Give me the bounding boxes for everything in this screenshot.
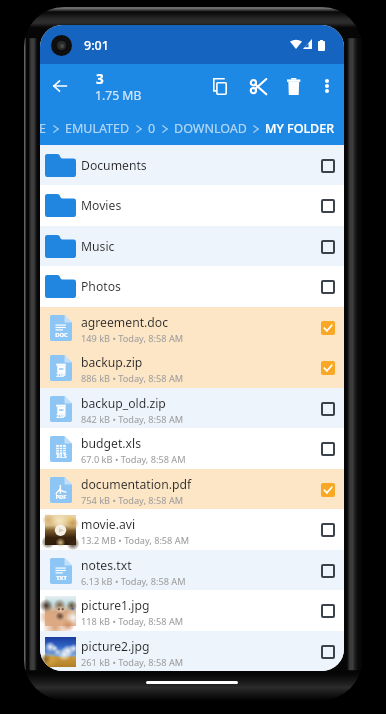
button[interactable]: More options	[310, 69, 344, 103]
staticText: XLS	[56, 452, 67, 460]
staticText: ZIP	[56, 371, 66, 379]
staticText: 3	[96, 70, 104, 88]
staticText: 13.2 MB • Today, 8:58 AM	[81, 534, 189, 547]
staticText: 1.75 MB	[95, 87, 142, 104]
button[interactable]: Select Movies	[312, 190, 343, 221]
button[interactable]: PDF	[40, 469, 344, 509]
staticText: 6.13 kB • Today, 8:58 AM	[81, 575, 186, 588]
button[interactable]: Select budget.xls	[312, 433, 343, 464]
button[interactable]: DOC	[40, 307, 344, 347]
staticText: Photos	[81, 278, 121, 295]
staticText: DOC	[55, 331, 68, 339]
staticText: movie.avi	[81, 516, 136, 533]
staticText: picture1.jpg	[81, 597, 150, 614]
button[interactable]: picture1.jpg	[40, 590, 344, 631]
button[interactable]: movie.avi	[40, 509, 344, 550]
staticText: notes.txt	[81, 557, 132, 574]
button[interactable]: Select Photos	[312, 271, 343, 302]
staticText: budget.xls	[81, 435, 141, 452]
button[interactable]: Back	[41, 67, 79, 105]
staticText: PDF	[55, 493, 67, 501]
button[interactable]: Select picture1.jpg	[312, 595, 343, 626]
button[interactable]: ZIP	[40, 388, 344, 428]
button[interactable]: Select notes.txt	[312, 555, 343, 586]
button[interactable]: picture2.jpg	[40, 631, 344, 671]
staticText: Documents	[81, 157, 147, 174]
staticText: TXT	[56, 574, 67, 582]
button[interactable]: Movies	[40, 185, 344, 226]
button[interactable]: Music	[40, 226, 344, 266]
button[interactable]: Delete	[277, 69, 311, 103]
staticText: Music	[81, 238, 115, 255]
button[interactable]: Select backup.zip	[312, 352, 343, 383]
button[interactable]: Select agreement.doc	[312, 312, 343, 343]
button[interactable]: Select Documents	[312, 150, 343, 181]
staticText: 261 kB • Today, 8:58 AM	[81, 656, 184, 669]
button[interactable]: XLS	[40, 428, 344, 469]
button[interactable]: Copy	[203, 69, 237, 103]
staticText: 842 kB • Today, 8:58 AM	[81, 413, 184, 426]
staticText: Movies	[81, 197, 122, 214]
button[interactable]: Photos	[40, 266, 344, 307]
button[interactable]: TXT	[40, 550, 344, 590]
staticText: picture2.jpg	[81, 638, 150, 655]
staticText: ZIP	[56, 412, 66, 420]
button[interactable]: Select picture2.jpg	[312, 636, 343, 667]
button[interactable]: ZIP	[40, 347, 344, 388]
button[interactable]: DOWNLOAD	[174, 120, 247, 137]
staticText: documentation.pdf	[81, 476, 192, 493]
staticText: E	[40, 120, 46, 137]
staticText: agreement.doc	[81, 314, 169, 331]
staticText: 886 kB • Today, 8:58 AM	[81, 372, 184, 385]
staticText: backup.zip	[81, 354, 143, 371]
staticText: 149 kB • Today, 8:58 AM	[81, 332, 184, 345]
button[interactable]: Select Music	[312, 231, 343, 262]
button[interactable]: MY FOLDER	[265, 120, 335, 137]
button[interactable]: Select movie.avi	[312, 514, 343, 545]
staticText: backup_old.zip	[81, 395, 166, 412]
button[interactable]: Select documentation.pdf	[312, 474, 343, 505]
button[interactable]: Select backup_old.zip	[312, 393, 343, 424]
button[interactable]: Cut	[241, 69, 275, 103]
staticText: 67.0 kB • Today, 8:58 AM	[81, 453, 186, 466]
button[interactable]: EMULATED	[65, 120, 130, 137]
button[interactable]: Documents	[40, 145, 344, 185]
staticText: 754 kB • Today, 8:58 AM	[81, 494, 184, 507]
button[interactable]: 0	[148, 120, 156, 137]
staticText: 9:01	[84, 37, 109, 54]
staticText: 118 kB • Today, 8:58 AM	[81, 615, 184, 628]
